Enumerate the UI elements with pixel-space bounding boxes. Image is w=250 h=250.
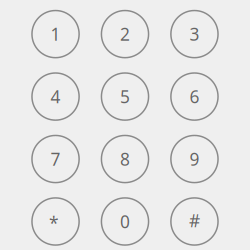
staticText: 1 bbox=[50, 23, 60, 46]
staticText: 9 bbox=[189, 147, 199, 170]
button[interactable]: # bbox=[171, 198, 218, 245]
staticText: 5 bbox=[120, 85, 130, 108]
button[interactable]: 4 bbox=[32, 73, 79, 120]
staticText: * bbox=[49, 211, 59, 234]
button[interactable]: 6 bbox=[171, 73, 218, 120]
staticText: 7 bbox=[50, 147, 60, 170]
staticText: 8 bbox=[120, 147, 130, 170]
staticText: 6 bbox=[189, 85, 199, 108]
button[interactable]: 0 bbox=[101, 198, 148, 245]
button[interactable]: * bbox=[32, 198, 79, 245]
button[interactable]: 5 bbox=[101, 73, 148, 120]
button[interactable]: 9 bbox=[171, 135, 218, 183]
button[interactable]: 8 bbox=[101, 135, 148, 183]
button[interactable]: 3 bbox=[171, 10, 218, 58]
staticText: 3 bbox=[189, 23, 199, 46]
staticText: 0 bbox=[120, 210, 130, 233]
staticText: # bbox=[189, 209, 200, 232]
button[interactable]: 1 bbox=[32, 10, 79, 58]
button[interactable]: 7 bbox=[32, 135, 79, 183]
staticText: 2 bbox=[120, 23, 130, 46]
button[interactable]: 2 bbox=[101, 10, 148, 58]
staticText: 4 bbox=[50, 85, 60, 108]
